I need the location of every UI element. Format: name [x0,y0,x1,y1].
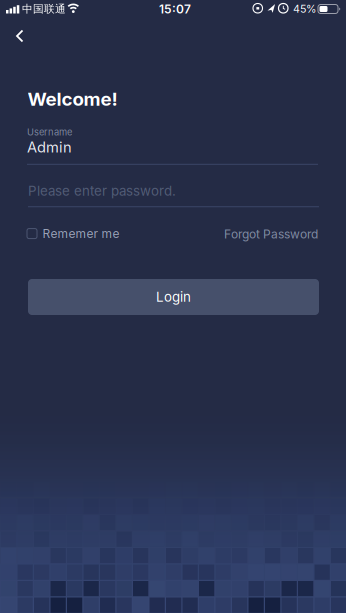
staticText: Forgot Password [224,227,318,241]
staticText: 中国联通 [22,2,66,16]
button[interactable] [6,20,34,52]
staticText: 45% [293,2,316,15]
staticText: Username [27,126,72,137]
staticText: Rememer me [42,226,119,241]
staticText: Login [156,289,191,305]
staticText: Welcome! [27,88,117,110]
staticText: 15:07 [159,2,191,16]
button[interactable]: Forgot Password [224,227,318,241]
staticText: Please enter password. [28,183,176,199]
staticText: Admin [27,138,72,156]
button[interactable]: Rememer me [27,226,119,241]
button[interactable]: Login [28,279,319,315]
button[interactable]: Please enter password. [28,183,319,207]
button[interactable]: Username [27,126,318,165]
